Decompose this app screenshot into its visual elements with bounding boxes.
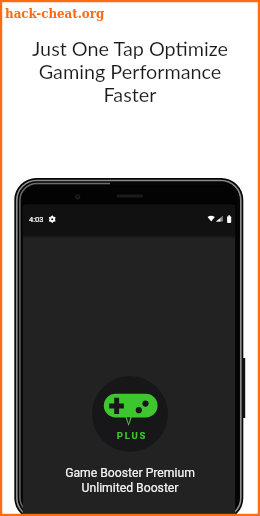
staticText: PLUS bbox=[2, 430, 260, 441]
button[interactable]: hack-cheat.org bbox=[5, 6, 105, 22]
button[interactable]: Boost now bbox=[92, 376, 168, 452]
staticText: 4:03 bbox=[29, 215, 44, 224]
staticText: Just One Tap Optimize Gaming Performance… bbox=[0, 36, 260, 106]
staticText: Game Booster Premium Unlimited Booster bbox=[0, 466, 260, 495]
staticText: hack-cheat.org bbox=[5, 6, 105, 22]
button[interactable]: Settings bbox=[48, 215, 58, 225]
